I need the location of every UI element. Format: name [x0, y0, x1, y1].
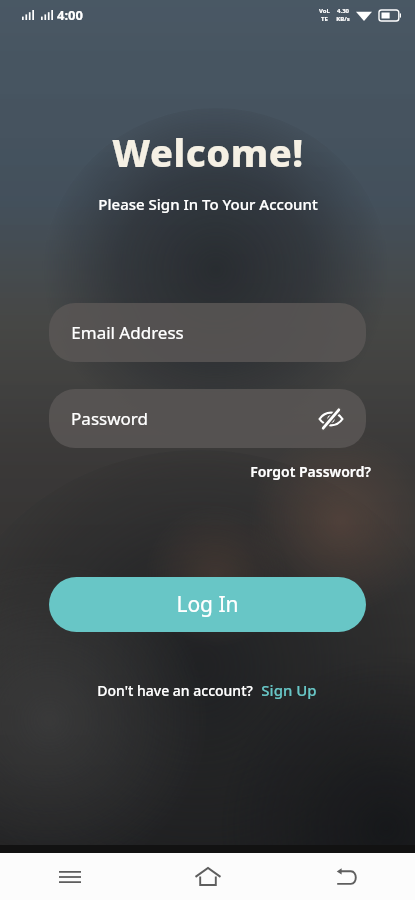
button[interactable]: Sign Up	[259, 677, 319, 703]
button[interactable]: Password	[49, 389, 366, 448]
staticText: Password	[71, 407, 148, 430]
staticText: 4.30	[337, 7, 349, 15]
button[interactable]: Recent apps	[0, 853, 139, 900]
staticText: TE	[321, 15, 328, 23]
button[interactable]: Home	[139, 853, 277, 900]
staticText: Welcome!	[112, 126, 304, 178]
staticText: VoL	[319, 7, 330, 15]
staticText: 4:00	[57, 6, 83, 24]
button[interactable]: Forgot Password?	[246, 458, 375, 485]
staticText: Don't have an account?	[97, 681, 253, 700]
staticText: Log In	[176, 590, 239, 619]
button[interactable]: Email Address	[49, 303, 366, 362]
button[interactable]: Log In	[49, 577, 366, 632]
button[interactable]: Back	[277, 853, 415, 900]
staticText: Email Address	[71, 321, 184, 344]
staticText: KB/s	[336, 15, 350, 23]
button[interactable]: Show password	[316, 404, 346, 434]
staticText: Please Sign In To Your Account	[98, 194, 318, 214]
